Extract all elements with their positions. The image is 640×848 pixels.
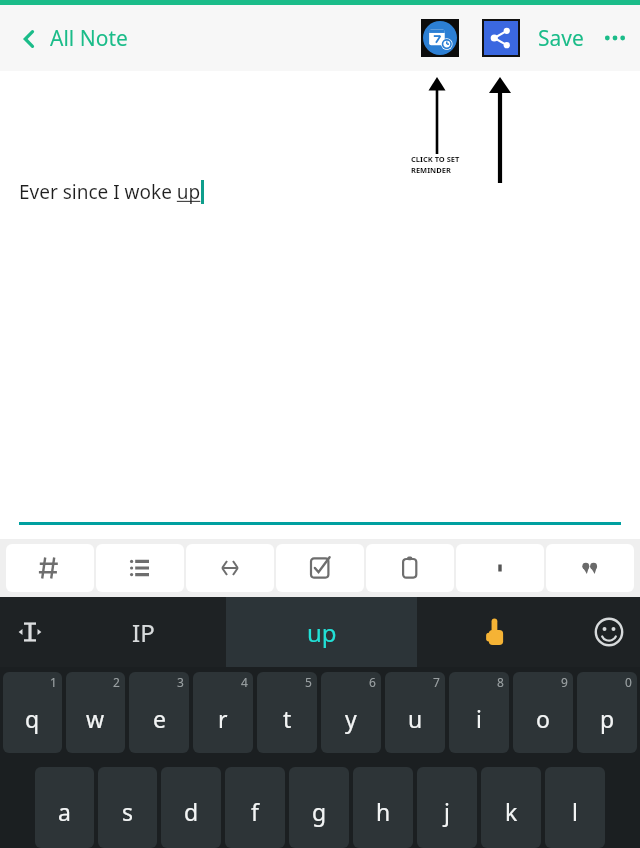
staticText: a <box>58 796 71 827</box>
staticText: w <box>86 703 105 734</box>
button[interactable]: h <box>353 767 413 848</box>
staticText: t <box>283 703 292 734</box>
staticText: 8 <box>497 674 504 690</box>
button[interactable]: 3 <box>129 672 189 753</box>
button[interactable]: k <box>481 767 541 848</box>
button[interactable]: Clipboard <box>366 544 454 592</box>
button[interactable]: f <box>225 767 285 848</box>
button[interactable]: 5 <box>257 672 317 753</box>
button[interactable]: Save <box>534 18 588 59</box>
button[interactable]: 4 <box>193 672 253 753</box>
button[interactable]: Checklist <box>276 544 364 592</box>
staticText: j <box>444 796 450 827</box>
staticText: 2 <box>113 674 120 690</box>
button[interactable]: l <box>545 767 605 848</box>
button[interactable]: 9 <box>513 672 573 753</box>
staticText: l <box>572 796 578 827</box>
staticText: g <box>312 796 327 827</box>
button[interactable]: Cursor control <box>0 597 60 667</box>
button[interactable]: a <box>35 767 94 848</box>
staticText: IP <box>132 616 155 649</box>
staticText: 9 <box>561 674 568 690</box>
button[interactable]: 6 <box>321 672 381 753</box>
staticText: 0 <box>625 674 632 690</box>
staticText: y <box>345 703 357 734</box>
staticText: f <box>251 796 259 827</box>
staticText: e <box>153 703 166 734</box>
button[interactable]: Code <box>186 544 274 592</box>
button[interactable]: Emoji <box>577 597 640 667</box>
staticText: 3 <box>177 674 184 690</box>
staticText: Ever since I woke up <box>19 179 201 205</box>
staticText: s <box>122 796 134 827</box>
button[interactable] <box>417 597 577 667</box>
button[interactable]: Quote <box>546 544 634 592</box>
button[interactable]: up <box>226 597 417 667</box>
button[interactable]: 7 <box>385 672 445 753</box>
staticText: o <box>536 703 550 734</box>
button[interactable]: 1 <box>3 672 62 753</box>
staticText: up <box>307 616 337 649</box>
staticText: d <box>184 796 199 827</box>
button[interactable]: d <box>161 767 221 848</box>
staticText: 7 <box>433 674 440 690</box>
staticText: 4 <box>241 674 248 690</box>
staticText: h <box>376 796 391 827</box>
staticText: All Note <box>50 24 128 53</box>
staticText: 5 <box>305 674 312 690</box>
button[interactable]: Divider <box>456 544 544 592</box>
button[interactable]: 8 <box>449 672 509 753</box>
button[interactable]: IP <box>60 597 226 667</box>
button[interactable]: Heading <box>6 544 94 592</box>
staticText: 1 <box>50 674 57 690</box>
button[interactable]: Set reminder <box>421 19 459 57</box>
staticText: CLICK TO SET <box>411 154 460 164</box>
button[interactable]: s <box>98 767 157 848</box>
button[interactable]: Share <box>484 21 518 55</box>
staticText: REMINDER <box>411 165 451 175</box>
staticText: i <box>476 703 482 734</box>
staticText: Save <box>538 24 584 53</box>
staticText: k <box>505 796 518 827</box>
button[interactable]: j <box>417 767 477 848</box>
staticText: u <box>408 703 423 734</box>
staticText: p <box>600 703 615 734</box>
staticText: q <box>25 703 40 734</box>
staticText: r <box>218 703 228 734</box>
button[interactable]: 0 <box>577 672 637 753</box>
button[interactable]: g <box>289 767 349 848</box>
button[interactable]: More options <box>600 23 630 53</box>
button[interactable]: 2 <box>66 672 125 753</box>
staticText: 6 <box>369 674 376 690</box>
button[interactable]: Bulleted list <box>96 544 184 592</box>
button[interactable]: All Note <box>14 24 132 53</box>
